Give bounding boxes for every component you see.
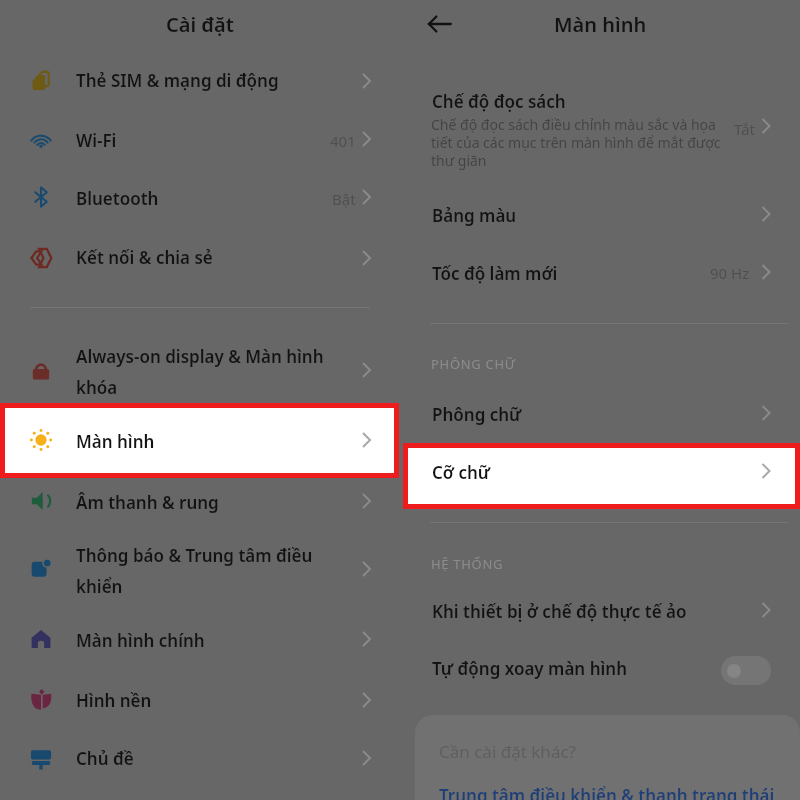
- staticText: Âm thanh & rung: [76, 491, 331, 514]
- staticText: Hình nền: [76, 689, 331, 712]
- staticText: Kết nối & chia sẻ: [76, 246, 331, 269]
- staticText: Cài đặt: [166, 11, 234, 38]
- button[interactable]: [400, 588, 800, 632]
- staticText: Chế độ đọc sách điều chỉnh màu sắc và họ…: [431, 115, 761, 170]
- staticText: Khi thiết bị ở chế độ thực tế ảo: [432, 600, 687, 623]
- staticText: Màn hình chính: [76, 629, 331, 652]
- staticText: PHÔNG CHỮ: [431, 355, 516, 373]
- button[interactable]: [0, 618, 400, 664]
- staticText: Phông chữ: [432, 403, 522, 426]
- button[interactable]: [0, 176, 400, 222]
- button[interactable]: [400, 82, 800, 172]
- staticText: Tốc độ làm mới: [432, 262, 558, 285]
- staticText: HỆ THỐNG: [431, 555, 504, 573]
- staticText: Cần cài đặt khác?: [439, 740, 576, 763]
- staticText: Wi-Fi: [76, 129, 331, 152]
- button[interactable]: [405, 445, 798, 507]
- staticText: Chế độ đọc sách: [432, 90, 566, 113]
- button[interactable]: [0, 480, 400, 526]
- button[interactable]: Auto rotate screen toggle: [721, 656, 771, 685]
- staticText: Always-on display & Màn hình khóa: [76, 345, 331, 399]
- staticText: Bảng màu: [432, 204, 517, 227]
- staticText: Bluetooth: [76, 187, 331, 210]
- button[interactable]: [0, 542, 400, 600]
- button[interactable]: [0, 678, 400, 724]
- button[interactable]: [0, 419, 400, 465]
- button[interactable]: [0, 118, 400, 164]
- staticText: Bật: [332, 189, 356, 209]
- staticText: Chủ đề: [76, 747, 331, 770]
- staticText: Thẻ SIM & mạng di động: [76, 69, 331, 92]
- staticText: Tự động xoay màn hình: [432, 657, 627, 680]
- button[interactable]: [400, 250, 800, 294]
- staticText: 90 Hz: [710, 263, 750, 283]
- button[interactable]: Back: [418, 2, 462, 46]
- button[interactable]: [0, 736, 400, 782]
- staticText: Màn hình: [76, 430, 331, 453]
- button[interactable]: [0, 343, 400, 401]
- button[interactable]: [0, 58, 400, 104]
- staticText: Tắt: [734, 119, 755, 139]
- staticText: 401: [330, 131, 356, 151]
- button[interactable]: [400, 392, 800, 434]
- button[interactable]: [400, 648, 800, 692]
- staticText: Màn hình: [554, 11, 647, 38]
- button[interactable]: [400, 192, 800, 236]
- staticText: Trung tâm điều khiển & thanh trạng thái: [439, 784, 775, 800]
- staticText: Cỡ chữ: [432, 461, 491, 484]
- staticText: Thông báo & Trung tâm điều khiển: [76, 544, 331, 598]
- button[interactable]: [0, 235, 400, 281]
